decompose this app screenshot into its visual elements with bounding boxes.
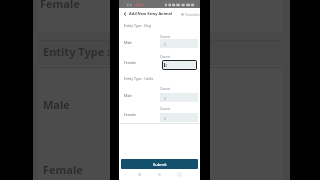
staticText: Count: [160, 34, 170, 39]
button[interactable]: 0: [160, 93, 198, 102]
button[interactable]: Submit: [121, 159, 198, 169]
staticText: Entity Type : Cattle: [43, 44, 147, 59]
staticText: Entity Type : Dog: [124, 23, 151, 28]
button[interactable]: Back: [137, 172, 142, 177]
staticText: 0: [164, 42, 167, 47]
staticText: Count: [160, 106, 170, 111]
button[interactable]: Home: [157, 172, 162, 177]
staticText: Submit: [153, 162, 167, 167]
button[interactable]: Back: [120, 8, 129, 19]
staticText: Count: [160, 54, 170, 59]
button[interactable]: 4: [162, 60, 197, 70]
staticText: 0: [164, 96, 167, 101]
button[interactable]: 0: [160, 113, 198, 122]
button[interactable]: Recents: [177, 172, 182, 177]
staticText: 0: [164, 116, 167, 121]
staticText: Count: [160, 86, 170, 91]
staticText: Entity Type : Cattle: [124, 76, 154, 81]
staticText: Female: [124, 112, 136, 117]
staticText: Translate: [185, 12, 200, 17]
staticText: Male: [43, 97, 70, 112]
staticText: Female: [43, 162, 83, 177]
staticText: Male: [124, 93, 133, 98]
staticText: Female: [40, 0, 80, 11]
staticText: Male: [124, 40, 133, 45]
staticText: Add New Stray Animal: [129, 11, 173, 16]
staticText: Female: [124, 60, 136, 65]
button[interactable]: 0: [160, 39, 198, 48]
staticText: 4: [165, 63, 168, 68]
